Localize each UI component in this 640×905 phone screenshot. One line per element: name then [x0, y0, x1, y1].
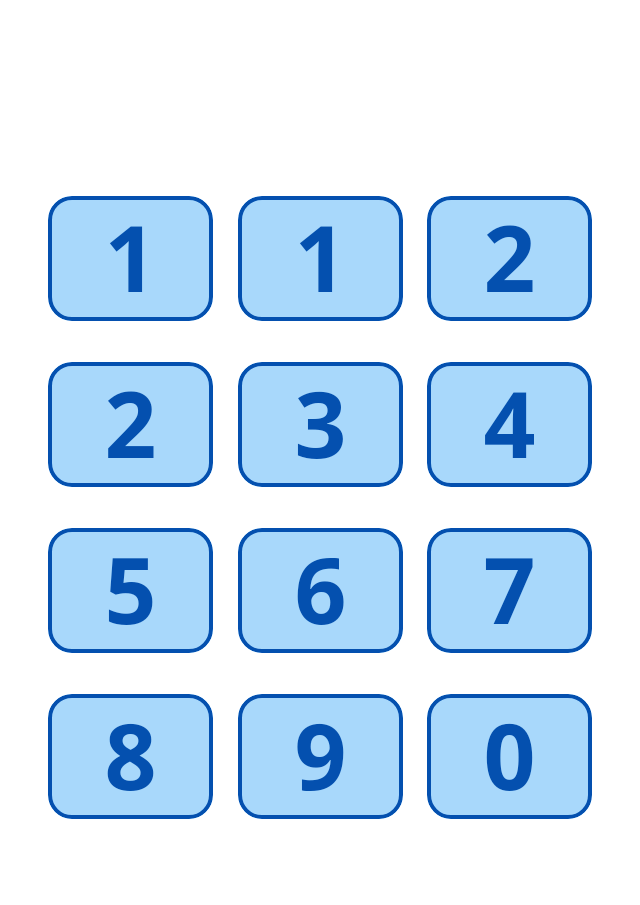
staticText: 7: [483, 528, 536, 651]
button[interactable]: 5: [48, 528, 213, 653]
button[interactable]: 0: [427, 694, 592, 819]
button[interactable]: 2: [427, 196, 592, 321]
staticText: 4: [483, 362, 536, 485]
staticText: 2: [104, 362, 157, 485]
staticText: 9: [294, 694, 347, 817]
staticText: 5: [104, 528, 157, 651]
button[interactable]: 1: [238, 196, 403, 321]
staticText: 0: [483, 694, 536, 817]
staticText: 2: [483, 196, 536, 319]
button[interactable]: 9: [238, 694, 403, 819]
button[interactable]: 1: [48, 196, 213, 321]
staticText: 1: [294, 196, 347, 319]
button[interactable]: 8: [48, 694, 213, 819]
staticText: 8: [104, 694, 157, 817]
button[interactable]: 7: [427, 528, 592, 653]
button[interactable]: 3: [238, 362, 403, 487]
staticText: 3: [294, 362, 347, 485]
staticText: 1: [104, 196, 157, 319]
button[interactable]: 2: [48, 362, 213, 487]
button[interactable]: 6: [238, 528, 403, 653]
button[interactable]: 4: [427, 362, 592, 487]
staticText: 6: [294, 528, 347, 651]
